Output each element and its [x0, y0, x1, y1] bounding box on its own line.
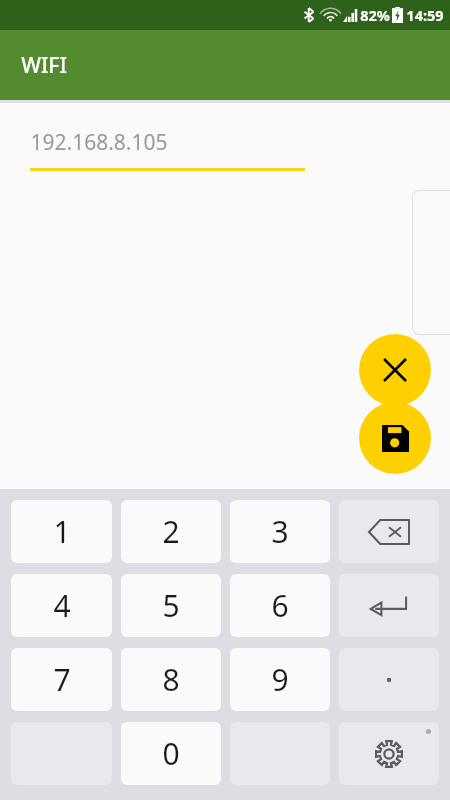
button[interactable]: Close — [359, 334, 431, 406]
staticText: 192.168.8.105 — [30, 128, 168, 157]
staticText: 4 — [53, 585, 71, 626]
button[interactable]: Period — [339, 648, 439, 711]
staticText: 8 — [162, 659, 180, 700]
button[interactable]: 8 — [121, 648, 221, 711]
button[interactable]: 3 — [230, 500, 330, 563]
button[interactable]: 6 — [230, 574, 330, 637]
button[interactable]: Backspace — [339, 500, 439, 563]
button[interactable]: Settings — [339, 722, 439, 785]
button[interactable]: Enter — [339, 574, 439, 637]
button[interactable]: Save — [359, 402, 431, 474]
staticText: 1 — [53, 511, 71, 552]
staticText: 6 — [271, 585, 289, 626]
staticText: 9 — [271, 659, 289, 700]
staticText: 2 — [162, 511, 180, 552]
staticText: 0 — [162, 733, 180, 774]
staticText: 14:59 — [406, 5, 444, 25]
button[interactable]: 4 — [11, 574, 112, 637]
button[interactable]: 0 — [121, 722, 221, 785]
button[interactable]: 2 — [121, 500, 221, 563]
staticText: WIFI — [21, 51, 67, 80]
staticText: 3 — [271, 511, 289, 552]
staticText: 5 — [162, 585, 180, 626]
staticText: 7 — [53, 659, 71, 700]
button[interactable]: 9 — [230, 648, 330, 711]
button[interactable]: 7 — [11, 648, 112, 711]
button[interactable]: 1 — [11, 500, 112, 563]
staticText: 82% — [360, 5, 390, 25]
button[interactable]: 5 — [121, 574, 221, 637]
